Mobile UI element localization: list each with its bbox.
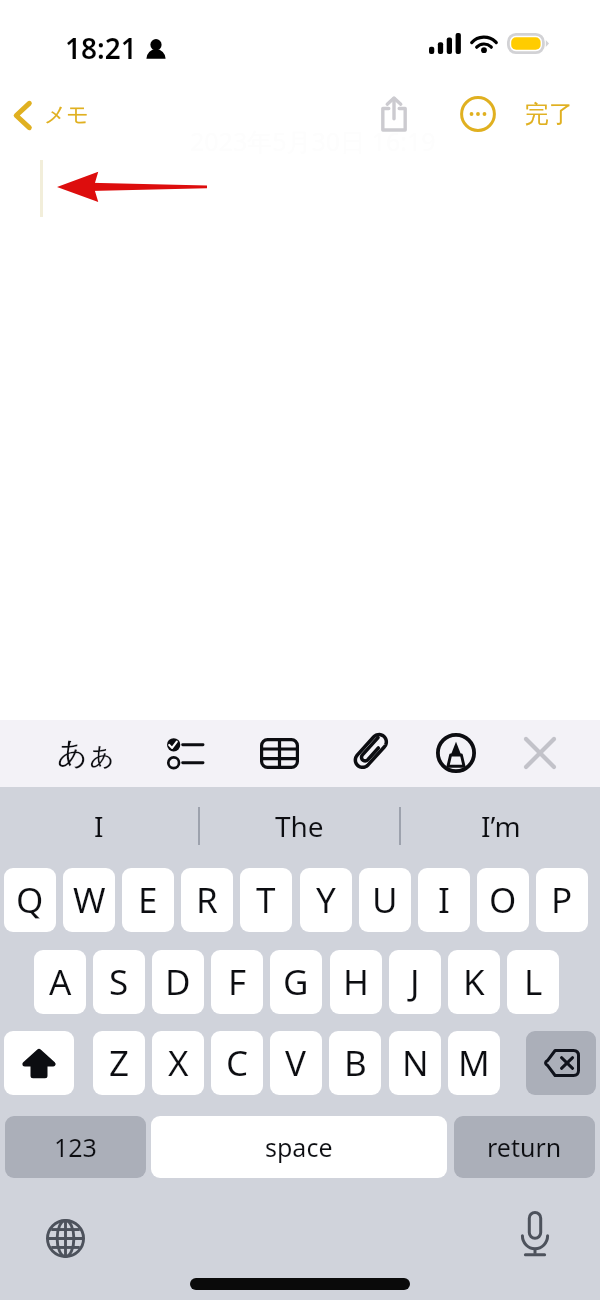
button[interactable]: G — [270, 950, 322, 1014]
staticText: I — [94, 807, 104, 845]
button[interactable]: Table — [253, 727, 305, 779]
button[interactable]: X — [152, 1031, 204, 1095]
button[interactable]: J — [389, 950, 441, 1014]
staticText: N — [402, 1039, 429, 1087]
staticText: O — [489, 876, 517, 924]
button[interactable]: Q — [4, 868, 56, 932]
staticText: F — [228, 958, 247, 1006]
staticText: Z — [109, 1039, 130, 1087]
staticText: Q — [16, 876, 44, 924]
staticText: L — [524, 958, 543, 1006]
button[interactable]: space — [151, 1116, 447, 1178]
staticText: W — [73, 876, 106, 924]
button[interactable]: V — [270, 1031, 322, 1095]
button[interactable]: 完了 — [518, 87, 579, 141]
button[interactable]: Y — [300, 868, 352, 932]
staticText: メモ — [44, 101, 90, 129]
button[interactable]: H — [330, 950, 382, 1014]
button[interactable]: Change keyboard — [42, 1215, 88, 1261]
button[interactable]: Share — [371, 91, 417, 137]
button[interactable]: W — [63, 868, 115, 932]
button[interactable]: O — [477, 868, 529, 932]
staticText: I — [438, 876, 450, 924]
staticText: space — [265, 1130, 333, 1164]
staticText: Y — [316, 876, 336, 924]
button[interactable]: Markup — [430, 727, 482, 779]
button[interactable]: D — [152, 950, 204, 1014]
button[interactable]: あぁ — [52, 727, 120, 779]
button[interactable]: Dictation — [512, 1211, 558, 1257]
staticText: J — [410, 958, 420, 1006]
button[interactable]: T — [240, 868, 292, 932]
staticText: 123 — [54, 1130, 97, 1164]
button[interactable]: F — [211, 950, 263, 1014]
button[interactable]: Backspace — [526, 1031, 596, 1095]
button[interactable]: S — [93, 950, 145, 1014]
staticText: The — [275, 807, 324, 845]
button[interactable]: I’m — [401, 787, 600, 865]
staticText: S — [109, 958, 129, 1006]
button[interactable]: I — [0, 787, 198, 865]
staticText: I’m — [481, 807, 521, 845]
staticText: G — [283, 958, 309, 1006]
staticText: B — [344, 1039, 367, 1087]
button[interactable]: I — [418, 868, 470, 932]
button[interactable]: K — [448, 950, 500, 1014]
button[interactable]: Z — [93, 1031, 145, 1095]
button[interactable]: A — [34, 950, 86, 1014]
button[interactable]: P — [536, 868, 588, 932]
button[interactable]: E — [122, 868, 174, 932]
button[interactable]: More options — [455, 91, 501, 137]
staticText: M — [458, 1039, 490, 1087]
staticText: 18:21 — [65, 29, 137, 67]
staticText: U — [372, 876, 398, 924]
staticText: E — [138, 876, 158, 924]
staticText: 完了 — [525, 99, 573, 129]
button[interactable]: メモ — [0, 86, 120, 144]
button[interactable]: Checklist — [158, 727, 210, 779]
button[interactable]: return — [454, 1116, 595, 1178]
button[interactable]: L — [507, 950, 559, 1014]
staticText: X — [168, 1039, 189, 1087]
button[interactable]: R — [181, 868, 233, 932]
button[interactable]: Shift — [4, 1031, 74, 1095]
staticText: A — [49, 958, 72, 1006]
staticText: K — [463, 958, 485, 1006]
button[interactable]: Hide keyboard — [514, 727, 566, 779]
staticText: R — [196, 876, 218, 924]
staticText: 2023年5月30日 16:19 — [190, 124, 436, 158]
button[interactable]: Attach file — [343, 727, 395, 779]
button[interactable]: N — [389, 1031, 441, 1095]
button[interactable]: The — [200, 787, 399, 865]
staticText: return — [487, 1130, 562, 1164]
staticText: D — [165, 958, 191, 1006]
button[interactable]: C — [211, 1031, 263, 1095]
staticText: T — [256, 876, 276, 924]
button[interactable]: 123 — [5, 1116, 146, 1178]
button[interactable]: U — [359, 868, 411, 932]
staticText: H — [343, 958, 369, 1006]
staticText: V — [285, 1039, 307, 1087]
button[interactable]: M — [448, 1031, 500, 1095]
staticText: C — [226, 1039, 249, 1087]
staticText: P — [551, 876, 573, 924]
staticText: あぁ — [57, 734, 115, 772]
button[interactable]: B — [329, 1031, 381, 1095]
